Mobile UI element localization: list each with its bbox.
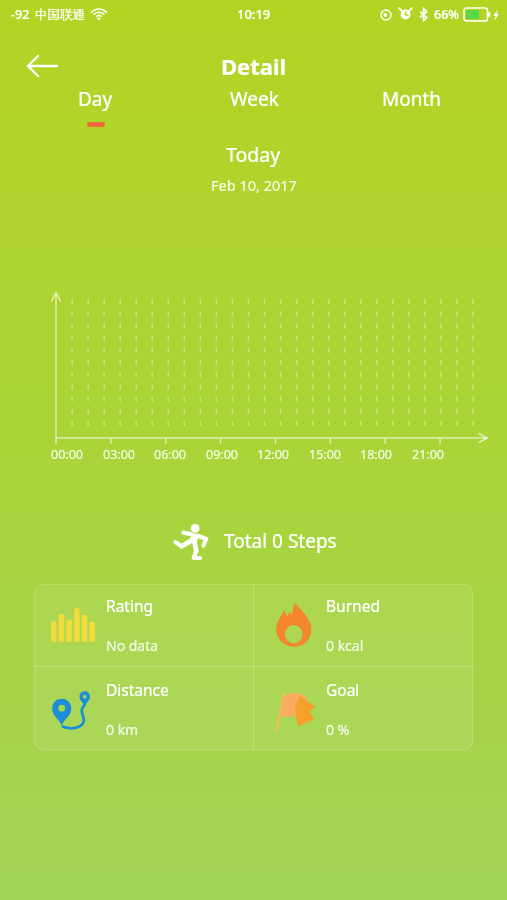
staticText: 0 km — [106, 720, 139, 739]
staticText: Rating — [106, 595, 154, 616]
staticText: 0 % — [326, 720, 350, 739]
staticText: 18:00 — [360, 446, 392, 463]
staticText: -92 — [11, 6, 30, 23]
staticText: Burned — [326, 595, 380, 616]
staticText: Day — [78, 86, 113, 112]
staticText: 66% — [434, 6, 459, 23]
staticText: 15:00 — [309, 446, 341, 463]
staticText: Detail — [221, 51, 287, 81]
staticText: 10:19 — [237, 5, 271, 23]
staticText: 0 kcal — [326, 636, 364, 655]
button[interactable]: Rating — [34, 584, 253, 666]
staticText: No data — [106, 636, 159, 655]
staticText: Goal — [326, 679, 360, 700]
staticText: 12:00 — [257, 446, 289, 463]
staticText: 中国联通 — [35, 7, 85, 23]
staticText: Week — [230, 86, 279, 112]
button[interactable]: Distance — [34, 667, 253, 750]
staticText: 00:00 — [51, 446, 83, 463]
button[interactable]: Month — [333, 84, 491, 130]
button[interactable]: Burned — [254, 584, 473, 666]
staticText: Feb 10, 2017 — [211, 175, 297, 195]
staticText: Distance — [106, 679, 169, 700]
staticText: 09:00 — [206, 446, 238, 463]
button[interactable]: Week — [175, 84, 333, 130]
button[interactable]: Goal — [254, 667, 473, 750]
staticText: Total 0 Steps — [224, 528, 337, 554]
staticText: Today — [226, 141, 281, 168]
button[interactable]: Day — [16, 84, 175, 130]
staticText: 21:00 — [412, 446, 444, 463]
staticText: 06:00 — [154, 446, 186, 463]
staticText: Month — [382, 86, 442, 112]
button[interactable]: Back — [18, 42, 66, 90]
staticText: 03:00 — [103, 446, 135, 463]
